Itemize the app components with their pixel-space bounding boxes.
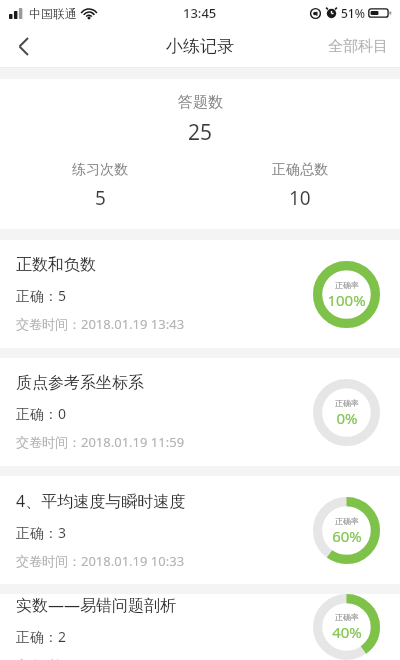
staticText: 4、平均速度与瞬时速度 — [16, 490, 186, 512]
staticText: 5 — [95, 185, 106, 211]
staticText: 实数——易错问题剖析 — [16, 594, 177, 616]
staticText: 质点参考系坐标系 — [16, 373, 144, 393]
button[interactable]: 4、平均速度与瞬时速度 — [0, 476, 400, 584]
staticText: 交卷时间：2018.01.19 13:43 — [16, 315, 185, 333]
staticText: 100% — [327, 290, 366, 310]
staticText: 交卷时间：2018.01.19 11:59 — [16, 433, 185, 451]
staticText: 中国联通 — [29, 6, 77, 21]
staticText: 正确率 — [335, 398, 359, 408]
staticText: 全部科目 — [328, 37, 388, 56]
button[interactable]: 实数——易错问题剖析 — [0, 594, 400, 660]
button[interactable]: 正数和负数 — [0, 240, 400, 348]
staticText: 正确总数 — [272, 161, 328, 179]
staticText: 练习次数 — [72, 161, 128, 179]
staticText: 40% — [332, 622, 362, 642]
staticText: 25 — [188, 118, 213, 147]
staticText: 小练记录 — [166, 36, 234, 57]
staticText: 正确率 — [335, 612, 359, 622]
staticText: 51% — [341, 5, 365, 21]
staticText: 答题数 — [178, 93, 223, 112]
staticText: 正确：2 — [16, 627, 67, 646]
staticText: 交卷时间：2018.01.19 10:33 — [16, 552, 185, 570]
staticText: 正确：0 — [16, 404, 67, 423]
staticText: 60% — [332, 526, 362, 546]
button[interactable]: Back — [0, 26, 46, 67]
staticText: 正确率 — [335, 516, 359, 526]
staticText: 10 — [289, 185, 311, 211]
staticText: 0% — [336, 408, 358, 428]
staticText: 正确：3 — [16, 523, 67, 542]
button[interactable]: 质点参考系坐标系 — [0, 358, 400, 466]
button[interactable]: 全部科目 — [316, 26, 400, 67]
staticText: 正确：5 — [16, 286, 67, 305]
staticText: 13:45 — [183, 4, 217, 22]
staticText: 正确率 — [335, 280, 359, 290]
staticText: 正数和负数 — [16, 255, 96, 275]
staticText: 交卷时间：2018.01.19 09:10 — [16, 656, 185, 660]
